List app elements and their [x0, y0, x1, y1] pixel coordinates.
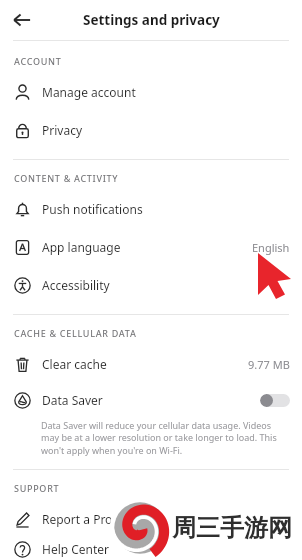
staticText: Accessibility: [42, 277, 110, 293]
staticText: Push notifications: [42, 201, 143, 217]
staticText: CACHE & CELLULAR DATA: [14, 327, 137, 339]
button[interactable]: Manage account: [0, 73, 302, 111]
button[interactable]: Report a Pro: [0, 500, 302, 538]
button[interactable]: Data Saver: [0, 383, 302, 417]
button[interactable]: App language: [0, 228, 302, 266]
staticText: Report a Pro: [42, 511, 113, 527]
staticText: Settings and privacy: [83, 11, 220, 29]
staticText: App language: [42, 239, 121, 255]
button[interactable]: Clear cache: [0, 345, 302, 383]
button[interactable]: Back: [6, 4, 38, 36]
button[interactable]: Privacy: [0, 111, 302, 149]
button[interactable]: Help Center: [0, 538, 302, 560]
button[interactable]: Accessibility: [0, 266, 302, 304]
staticText: Help Center: [42, 541, 110, 557]
staticText: Clear cache: [42, 356, 107, 372]
staticText: SUPPORT: [14, 482, 60, 494]
staticText: 9.77 MB: [248, 357, 290, 372]
staticText: CONTENT & ACTIVITY: [14, 172, 119, 184]
button[interactable]: Data Saver toggle: [260, 394, 290, 407]
staticText: ACCOUNT: [14, 55, 62, 67]
staticText: Manage account: [42, 84, 136, 100]
staticText: Privacy: [42, 122, 83, 138]
button[interactable]: Push notifications: [0, 190, 302, 228]
staticText: 周三手游网: [172, 513, 292, 543]
staticText: Data Saver will reduce your cellular dat…: [41, 419, 286, 457]
staticText: English: [252, 240, 290, 255]
staticText: Data Saver: [42, 392, 103, 408]
